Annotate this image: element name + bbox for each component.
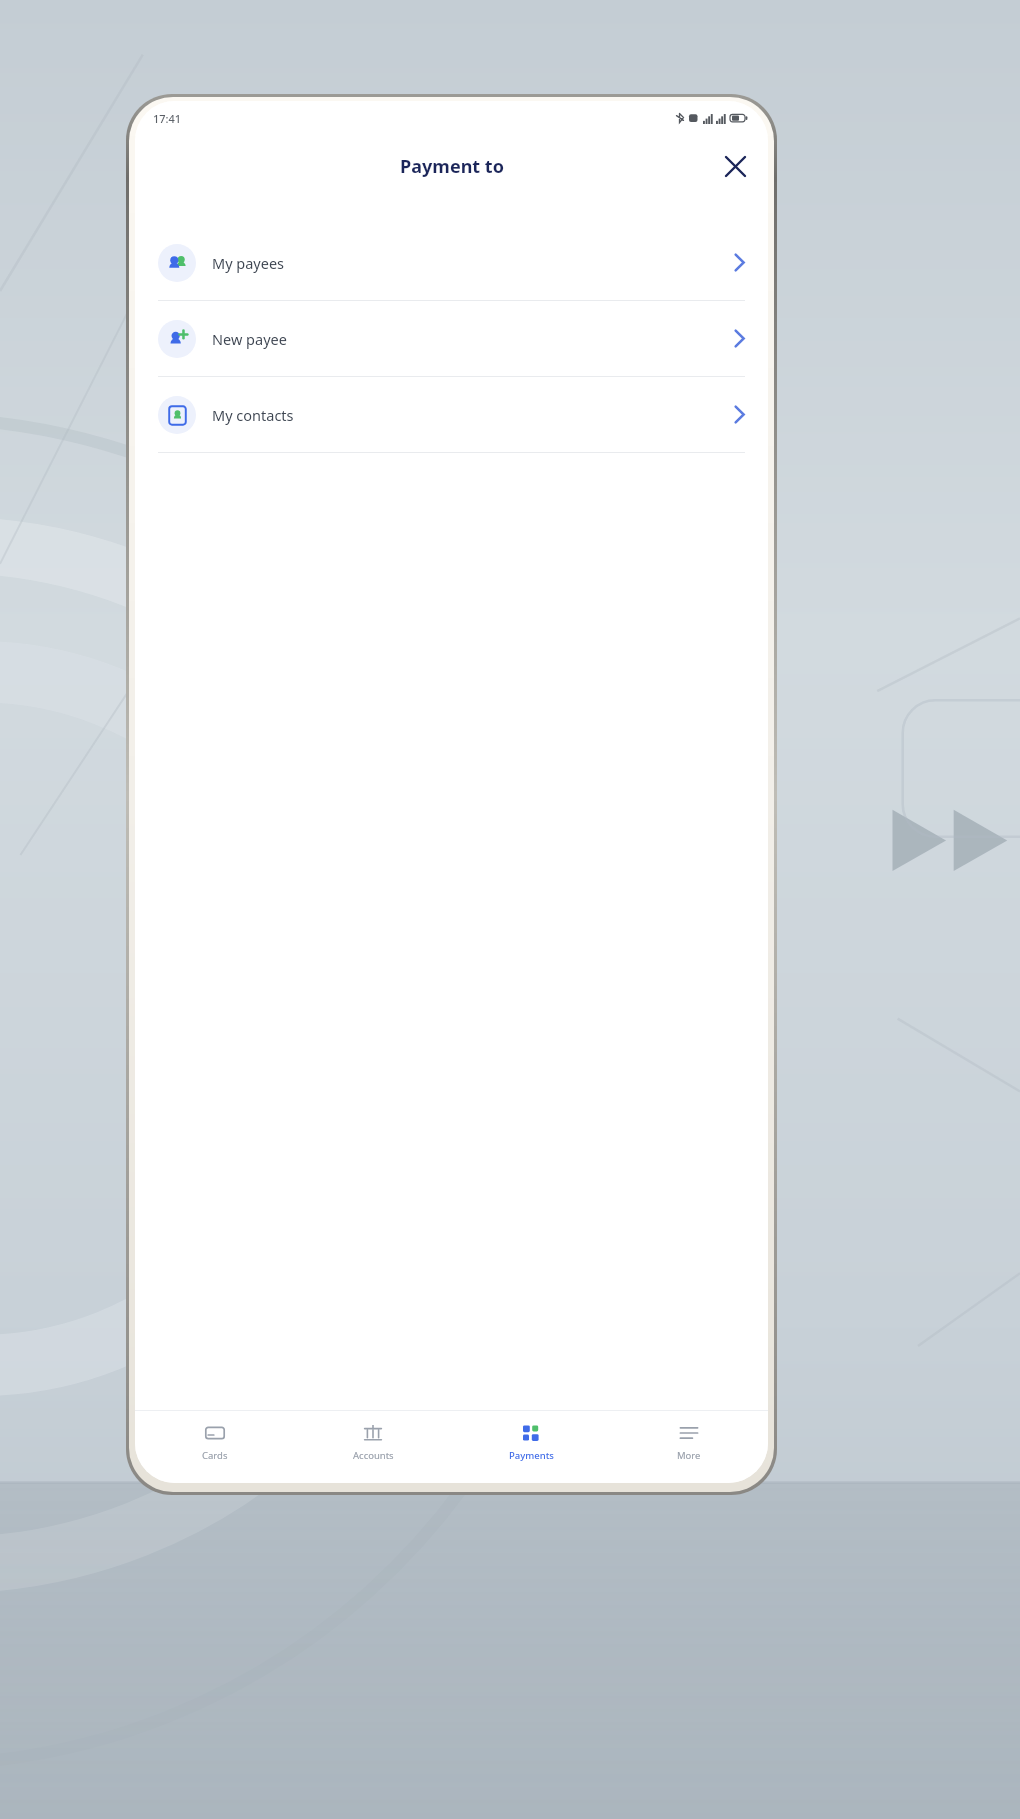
button[interactable]: More: [610, 1411, 768, 1473]
button[interactable]: Payments: [452, 1411, 610, 1473]
button[interactable]: Accounts: [294, 1411, 452, 1473]
button[interactable]: My payees: [135, 225, 768, 300]
staticText: Accounts: [353, 1449, 394, 1462]
staticText: More: [677, 1449, 701, 1462]
staticText: 17:41: [153, 111, 182, 126]
staticText: Payment to: [400, 154, 504, 179]
staticText: New payee: [212, 329, 287, 349]
staticText: My payees: [212, 253, 285, 273]
staticText: My contacts: [212, 405, 294, 425]
button[interactable]: New payee: [135, 301, 768, 376]
button[interactable]: My contacts: [135, 377, 768, 452]
staticText: Cards: [202, 1449, 228, 1462]
button[interactable]: Cards: [135, 1411, 294, 1473]
staticText: Payments: [509, 1449, 554, 1462]
button[interactable]: Close: [714, 145, 756, 187]
